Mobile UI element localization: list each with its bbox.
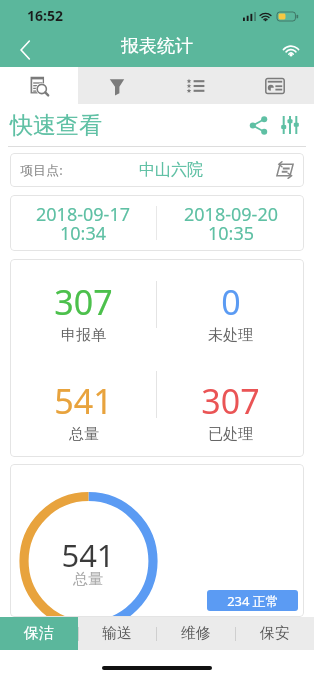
staticText: 保安 (260, 624, 290, 643)
button[interactable]: 维修 (156, 617, 235, 650)
staticText: 保洁 (24, 624, 54, 643)
button[interactable]: 2018-09-20 10:35 (157, 195, 304, 251)
button[interactable]: 2018-09-17 10:34 (10, 195, 156, 251)
staticText: 已处理 (208, 425, 253, 444)
staticText: 2018-09-20 10:35 (184, 202, 278, 245)
button[interactable]: Wifi (270, 26, 314, 67)
staticText: 307 (54, 279, 113, 325)
staticText: 541 (54, 378, 113, 424)
button[interactable]: 541 (10, 348, 156, 437)
button[interactable]: Tab 0 (0, 67, 78, 104)
staticText: 未处理 (208, 326, 253, 345)
button[interactable]: Tab 2 (156, 67, 235, 104)
staticText: 541 (61, 534, 115, 576)
button[interactable]: 保安 (235, 617, 314, 650)
button[interactable]: 输送 (78, 617, 156, 650)
button[interactable]: 项目点: (10, 153, 304, 187)
staticText: 总量 (69, 425, 99, 444)
button[interactable]: 保洁 (0, 617, 78, 650)
staticText: 总量 (73, 570, 103, 589)
staticText: 0 (221, 279, 241, 325)
staticText: 维修 (181, 624, 211, 643)
button[interactable]: 307 (157, 348, 304, 437)
staticText: 报表统计 (121, 35, 193, 58)
button[interactable]: Tab 1 (78, 67, 156, 104)
staticText: 项目点: (20, 161, 63, 179)
staticText: 申报单 (61, 326, 106, 345)
button[interactable]: Share (245, 112, 271, 138)
button[interactable]: 0 (157, 259, 304, 348)
staticText: 2018-09-17 10:34 (36, 202, 130, 245)
staticText: 234 正常 (227, 592, 279, 610)
staticText: 输送 (102, 624, 132, 643)
button[interactable]: 234 正常 (207, 590, 298, 611)
staticText: 16:52 (27, 6, 63, 25)
button[interactable]: 307 (10, 259, 156, 348)
staticText: 307 (201, 378, 260, 424)
button[interactable]: Settings (277, 112, 303, 138)
staticText: 快速查看 (10, 111, 102, 140)
button[interactable]: Tab 3 (235, 67, 314, 104)
button[interactable]: Back (0, 26, 44, 67)
staticText: 中山六院 (139, 160, 203, 180)
